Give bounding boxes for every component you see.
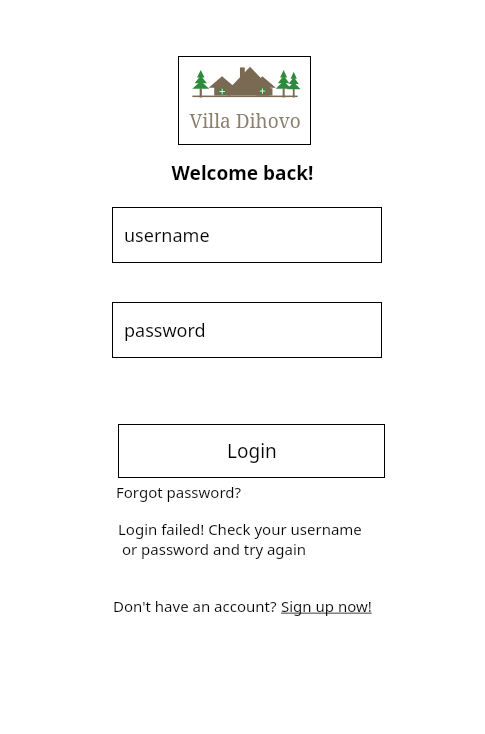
button[interactable]: password bbox=[112, 302, 382, 358]
staticText: password bbox=[124, 318, 206, 343]
button[interactable]: Sign up now! bbox=[281, 596, 372, 616]
staticText: Villa Dihovo bbox=[189, 108, 301, 134]
staticText: Login bbox=[227, 438, 277, 464]
staticText: username bbox=[124, 223, 210, 248]
staticText: Sign up now! bbox=[281, 596, 372, 616]
staticText: Don't have an account? bbox=[113, 596, 281, 616]
staticText: Welcome back! bbox=[0, 160, 485, 186]
staticText: or password and try again bbox=[118, 539, 307, 559]
button[interactable]: username bbox=[112, 207, 382, 263]
button[interactable]: Login bbox=[118, 424, 385, 478]
button[interactable]: Forgot password? bbox=[116, 482, 242, 502]
staticText: Forgot password? bbox=[116, 482, 242, 502]
staticText: Login failed! Check your username bbox=[118, 519, 362, 539]
